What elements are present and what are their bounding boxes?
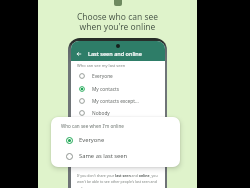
staticText: Choose who can see when you're online <box>38 11 197 32</box>
staticText: My contacts <box>92 86 119 93</box>
staticText: Everyone <box>79 136 105 144</box>
button[interactable]: Back <box>71 48 165 58</box>
staticText: Last seen and online <box>88 50 142 57</box>
button[interactable]: Back <box>74 49 83 58</box>
staticText: Nobody <box>92 110 110 117</box>
staticText: If you don't share your last seen and on… <box>77 173 158 188</box>
staticText: My contacts except... <box>92 98 139 105</box>
button[interactable]: My contacts except... <box>71 96 165 106</box>
staticText: Same as last seen <box>79 152 128 160</box>
staticText: Everyone <box>92 73 113 80</box>
staticText: Who can see when I'm online <box>61 123 124 129</box>
staticText: Who can see my last seen <box>77 63 126 68</box>
button[interactable]: My contacts <box>71 84 165 94</box>
button[interactable]: Same as last seen <box>51 148 180 164</box>
button[interactable]: Everyone <box>71 71 165 81</box>
button[interactable]: Nobody <box>71 108 165 118</box>
button[interactable]: Everyone <box>51 132 180 148</box>
